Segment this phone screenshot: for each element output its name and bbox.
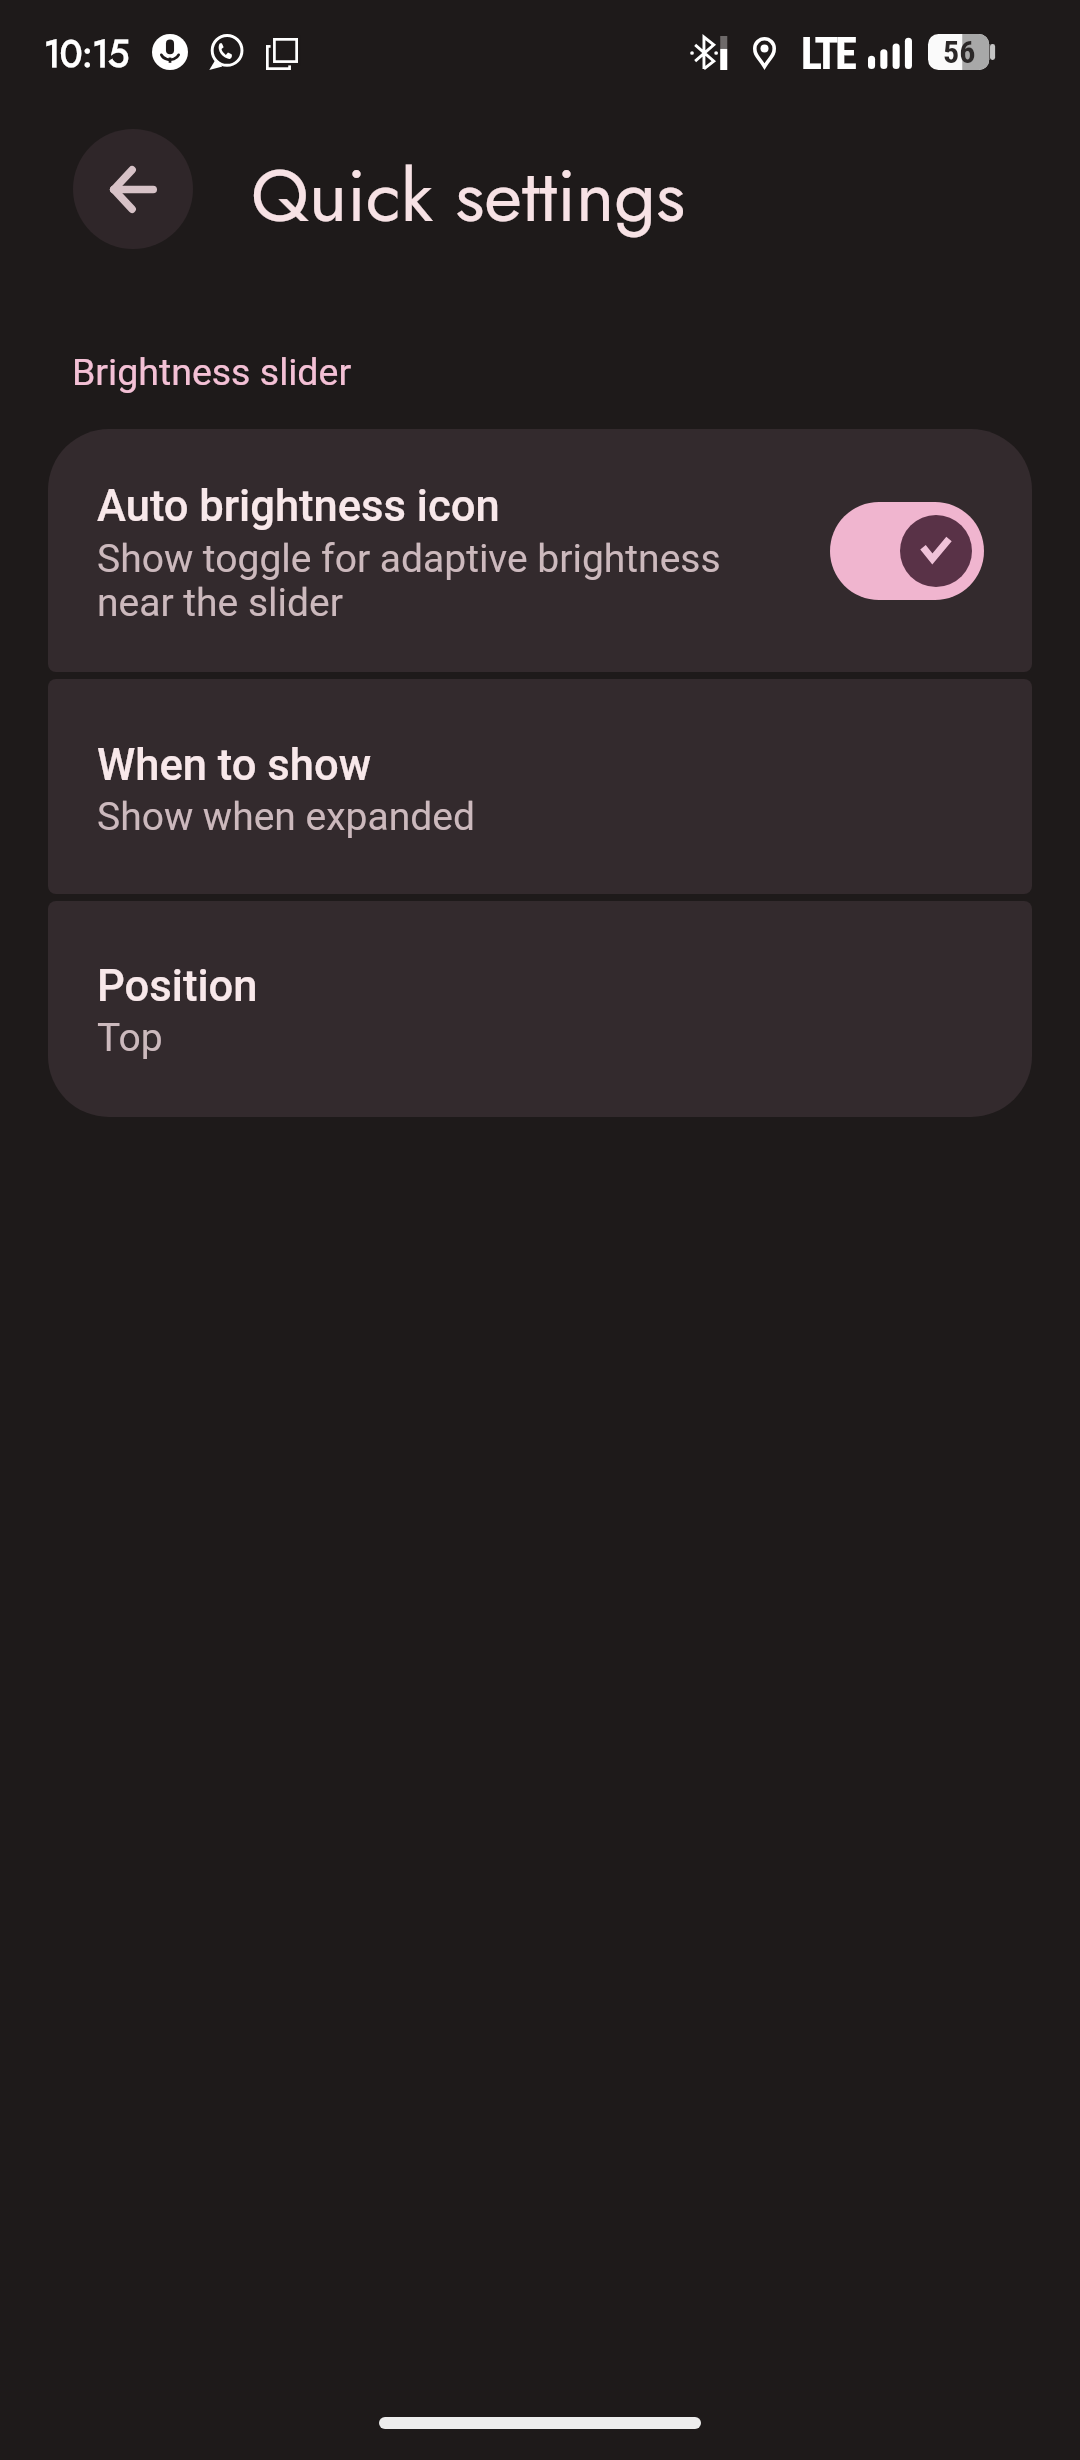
- staticText: Top: [97, 1015, 163, 1061]
- button[interactable]: Position: [48, 901, 1032, 1117]
- staticText: When to show: [97, 740, 371, 791]
- staticText: LTE: [801, 28, 854, 80]
- staticText: Show when expanded: [97, 794, 475, 840]
- button[interactable]: When to show: [48, 679, 1032, 894]
- staticText: 10:15: [44, 27, 129, 80]
- button[interactable]: Auto brightness icon toggle, on: [830, 502, 984, 600]
- staticText: Auto brightness icon: [97, 481, 500, 532]
- staticText: Brightness slider: [72, 350, 352, 394]
- button[interactable]: Back: [73, 129, 193, 249]
- staticText: Position: [97, 961, 258, 1012]
- button[interactable]: Auto brightness icon: [48, 429, 1032, 672]
- staticText: Show toggle for adaptive brightness near…: [97, 536, 721, 625]
- staticText: 56: [943, 33, 976, 69]
- staticText: Quick settings: [251, 143, 686, 248]
